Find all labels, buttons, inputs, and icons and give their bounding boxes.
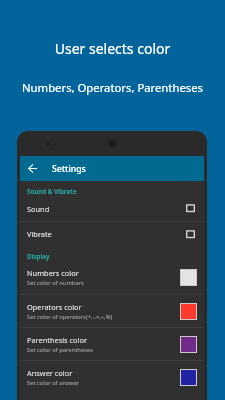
staticText: Settings [52, 163, 86, 175]
button[interactable]: Parenthesis color [20, 328, 204, 360]
staticText: Parenthesis color [27, 335, 88, 345]
staticText: Sound [27, 204, 50, 214]
staticText: Set color of parentheses [27, 346, 93, 354]
button[interactable]: Back [26, 162, 39, 175]
staticText: Numbers color [27, 268, 79, 278]
staticText: Display [27, 252, 50, 260]
staticText: Sound & Vibrate [27, 187, 77, 195]
staticText: Set color of answer [27, 379, 80, 387]
button[interactable]: Vibrate [20, 222, 204, 246]
staticText: Operators color [27, 302, 82, 312]
staticText: Set color of numbers [27, 279, 84, 287]
button[interactable]: Operators color [20, 295, 204, 327]
staticText: User selects color [0, 39, 225, 58]
button[interactable]: Answer color [20, 361, 204, 393]
button[interactable]: Numbers color [20, 261, 204, 294]
staticText: Answer color [27, 368, 73, 378]
staticText: Numbers, Operators, Parentheses [0, 80, 225, 95]
staticText: Set color of operators(+,-,×,÷,%) [27, 313, 113, 321]
button[interactable]: Sound [20, 196, 204, 221]
staticText: Vibrate [27, 229, 52, 239]
